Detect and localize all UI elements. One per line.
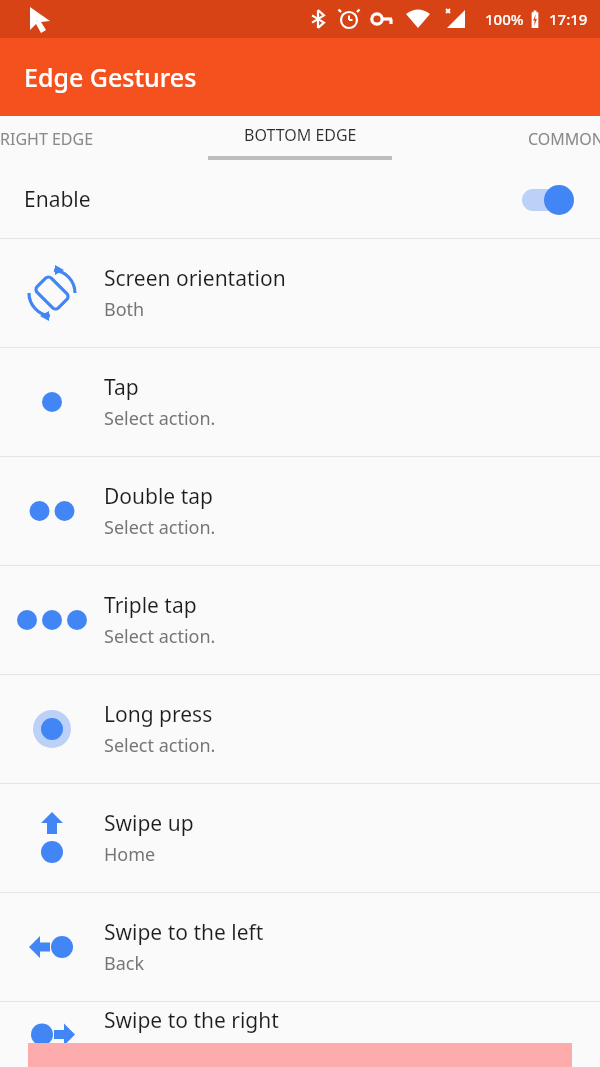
button[interactable]: Swipe up — [0, 784, 600, 892]
staticText: Select action. — [104, 624, 216, 649]
button[interactable]: Screen orientation — [0, 239, 600, 347]
button[interactable]: Tap — [0, 348, 600, 456]
staticText: Select action. — [104, 733, 216, 758]
staticText: Swipe to the right — [104, 1006, 279, 1035]
staticText: Long press — [104, 700, 213, 729]
staticText: Recents — [104, 1039, 171, 1064]
staticText: 100% — [485, 9, 524, 29]
button[interactable]: Swipe to the right — [0, 1002, 600, 1067]
button[interactable]: Double tap — [0, 457, 600, 565]
staticText: Back — [104, 951, 145, 976]
staticText: Home — [104, 842, 156, 867]
staticText: Enable — [24, 185, 91, 214]
button[interactable]: Enable — [0, 161, 600, 238]
staticText: 17:19 — [549, 9, 588, 29]
staticText: Swipe up — [104, 809, 194, 838]
button[interactable]: BOTTOM EDGE — [234, 118, 367, 152]
staticText: Double tap — [104, 482, 213, 511]
button[interactable]: RIGHT EDGE — [0, 122, 104, 156]
button[interactable]: COMMON — [518, 122, 600, 156]
staticText: Triple tap — [104, 591, 197, 620]
staticText: Edge Gestures — [24, 60, 197, 94]
staticText: Select action. — [104, 406, 216, 431]
button[interactable] — [520, 184, 576, 216]
staticText: Tap — [104, 373, 139, 402]
staticText: Screen orientation — [104, 264, 286, 293]
button[interactable]: Swipe to the left — [0, 893, 600, 1001]
staticText: Both — [104, 297, 145, 322]
staticText: Swipe to the left — [104, 918, 264, 947]
button[interactable]: Long press — [0, 675, 600, 783]
button[interactable]: Triple tap — [0, 566, 600, 674]
staticText: Select action. — [104, 515, 216, 540]
